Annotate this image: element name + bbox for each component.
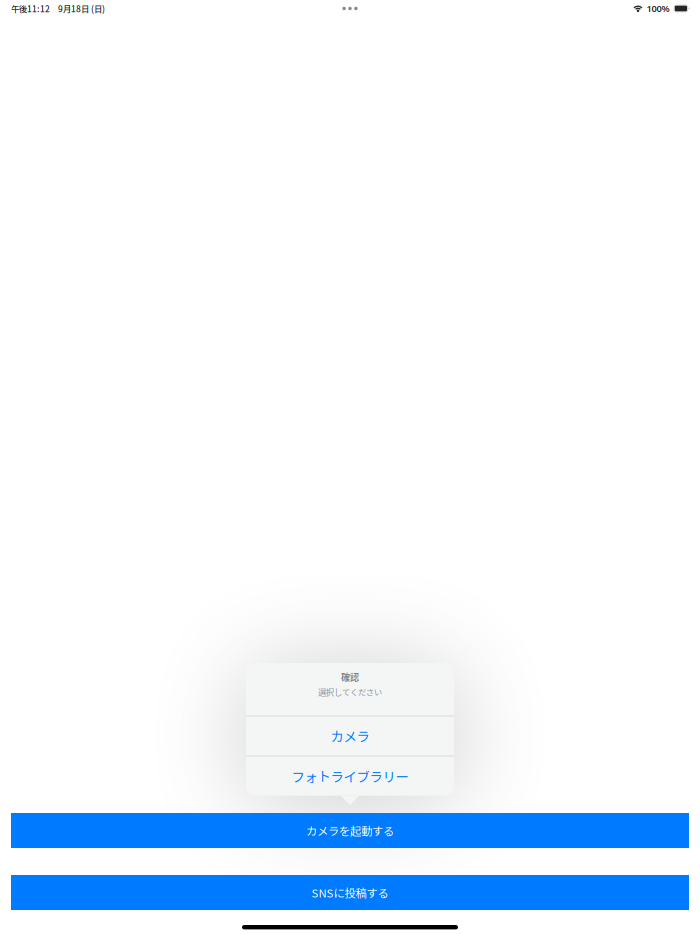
staticText: 選択してください: [318, 686, 382, 698]
staticText: 午後11:12 9月18日 (日): [11, 2, 105, 15]
staticText: SNSに投稿する: [311, 884, 388, 901]
staticText: 100%: [646, 2, 669, 15]
button[interactable]: カメラ: [246, 716, 454, 756]
staticText: フォトライブラリー: [291, 766, 408, 786]
staticText: 確認: [341, 670, 359, 684]
button[interactable]: SNSに投稿する: [11, 875, 689, 910]
staticText: カメラ: [330, 726, 369, 746]
button[interactable]: フォトライブラリー: [246, 756, 454, 796]
staticText: カメラを起動する: [306, 822, 394, 839]
button[interactable]: カメラを起動する: [11, 813, 689, 848]
